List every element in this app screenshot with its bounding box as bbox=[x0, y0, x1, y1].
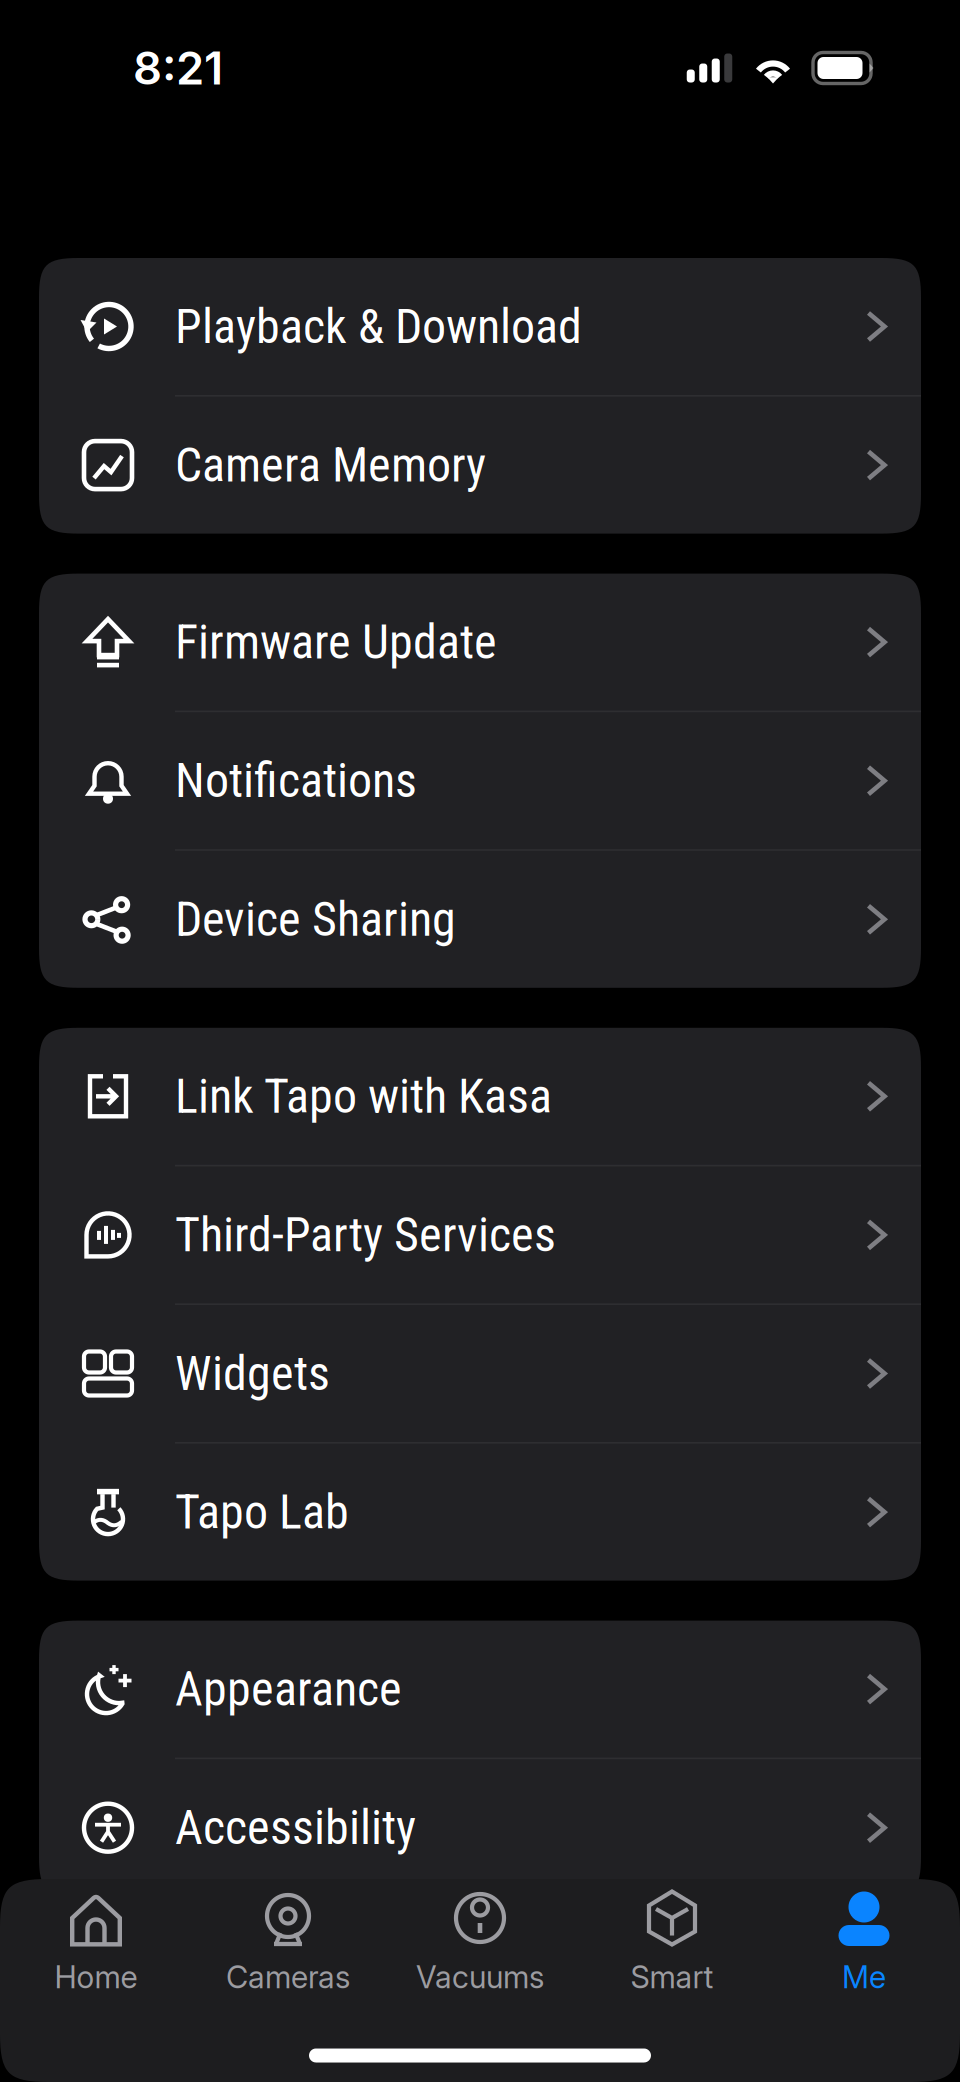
button[interactable]: Device Sharing bbox=[39, 851, 921, 988]
button[interactable]: Notifications bbox=[39, 712, 921, 849]
staticText: Me bbox=[842, 1958, 886, 1996]
button[interactable]: Link Tapo with Kasa bbox=[39, 1028, 921, 1165]
button[interactable]: Appearance bbox=[39, 1621, 921, 1758]
button[interactable]: Smart bbox=[576, 1889, 768, 1994]
staticText: Widgets bbox=[175, 1345, 330, 1402]
staticText: Playback & Download bbox=[175, 298, 582, 355]
staticText: Device Sharing bbox=[175, 891, 456, 947]
button[interactable]: Vacuums bbox=[384, 1889, 576, 1994]
staticText: Accessibility bbox=[175, 1800, 416, 1856]
staticText: Vacuums bbox=[416, 1958, 544, 1996]
button[interactable]: Camera Memory bbox=[39, 397, 921, 534]
button[interactable]: Playback & Download bbox=[39, 258, 921, 395]
staticText: Cameras bbox=[226, 1958, 350, 1996]
button[interactable]: Me bbox=[768, 1889, 960, 1994]
staticText: Camera Memory bbox=[175, 437, 486, 493]
staticText: Tapo Lab bbox=[175, 1484, 349, 1540]
button[interactable]: Third-Party Services bbox=[39, 1166, 921, 1303]
button[interactable]: Tapo Lab bbox=[39, 1444, 921, 1581]
staticText: 8:21 bbox=[133, 41, 223, 95]
button[interactable]: Firmware Update bbox=[39, 574, 921, 711]
staticText: Appearance bbox=[175, 1661, 402, 1717]
staticText: Third-Party Services bbox=[175, 1207, 556, 1263]
staticText: Firmware Update bbox=[175, 614, 497, 670]
staticText: Home bbox=[54, 1958, 137, 1996]
button[interactable]: Cameras bbox=[192, 1889, 384, 1994]
button[interactable]: Home bbox=[0, 1889, 192, 1994]
staticText: Link Tapo with Kasa bbox=[175, 1068, 552, 1124]
staticText: Notifications bbox=[175, 753, 417, 809]
button[interactable]: Accessibility bbox=[39, 1759, 921, 1896]
button[interactable]: Widgets bbox=[39, 1305, 921, 1442]
staticText: Smart bbox=[630, 1958, 713, 1996]
